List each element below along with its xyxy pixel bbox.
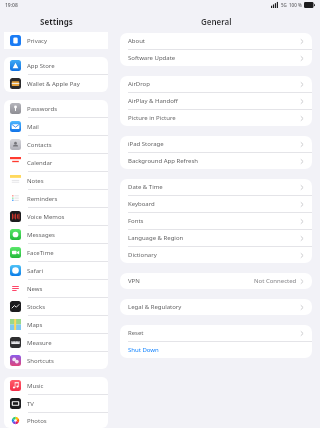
staticText: Stocks: [27, 303, 46, 311]
staticText: Contacts: [27, 141, 52, 149]
staticText: Settings: [40, 16, 73, 27]
button[interactable]: TV: [4, 395, 108, 412]
button[interactable]: Background App Refresh: [120, 153, 312, 169]
button[interactable]: Shut Down: [120, 342, 312, 358]
staticText: Not Connected: [254, 277, 297, 285]
button[interactable]: Reminders: [4, 190, 108, 207]
staticText: Software Update: [128, 54, 176, 62]
staticText: Background App Refresh: [128, 157, 198, 165]
staticText: Safari: [27, 267, 44, 275]
button[interactable]: Calendar: [4, 154, 108, 171]
staticText: Measure: [27, 339, 52, 347]
button[interactable]: Reset: [120, 325, 312, 341]
staticText: Reset: [128, 329, 144, 337]
button[interactable]: Notes: [4, 172, 108, 189]
button[interactable]: Stocks: [4, 298, 108, 315]
button[interactable]: Picture in Picture: [120, 110, 312, 126]
staticText: 19:08: [5, 2, 18, 9]
staticText: Voice Memos: [27, 213, 65, 221]
staticText: Photos: [27, 417, 47, 425]
button[interactable]: Contacts: [4, 136, 108, 153]
button[interactable]: Software Update: [120, 50, 312, 66]
button[interactable]: iPad Storage: [120, 136, 312, 152]
staticText: About: [128, 37, 146, 45]
button[interactable]: Legal & Regulatory: [120, 299, 312, 315]
staticText: iPad Storage: [128, 140, 164, 148]
staticText: Picture in Picture: [128, 114, 176, 122]
staticText: VPN: [128, 277, 140, 285]
staticText: Legal & Regulatory: [128, 303, 182, 311]
staticText: News: [27, 285, 43, 293]
staticText: Messages: [27, 231, 55, 239]
staticText: 100 %: [289, 2, 302, 8]
button[interactable]: Privacy: [4, 32, 108, 49]
button[interactable]: Passwords: [4, 100, 108, 117]
staticText: AirDrop: [128, 80, 150, 88]
staticText: Shut Down: [128, 346, 159, 354]
button[interactable]: FaceTime: [4, 244, 108, 261]
staticText: Date & Time: [128, 183, 163, 191]
button[interactable]: Messages: [4, 226, 108, 243]
button[interactable]: Maps: [4, 316, 108, 333]
button[interactable]: Music: [4, 377, 108, 394]
button[interactable]: AirDrop: [120, 76, 312, 92]
staticText: App Store: [27, 62, 55, 70]
staticText: AirPlay & Handoff: [128, 97, 178, 105]
staticText: Maps: [27, 321, 43, 329]
button[interactable]: Measure: [4, 334, 108, 351]
button[interactable]: Photos: [4, 413, 108, 428]
button[interactable]: Language & Region: [120, 230, 312, 246]
button[interactable]: Shortcuts: [4, 352, 108, 369]
button[interactable]: App Store: [4, 57, 108, 74]
button[interactable]: Keyboard: [120, 196, 312, 212]
button[interactable]: About: [120, 33, 312, 49]
staticText: Shortcuts: [27, 357, 54, 365]
staticText: Language & Region: [128, 234, 184, 242]
staticText: Notes: [27, 177, 44, 185]
staticText: Mail: [27, 123, 39, 131]
button[interactable]: News: [4, 280, 108, 297]
staticText: Reminders: [27, 195, 58, 203]
staticText: Fonts: [128, 217, 144, 225]
staticText: Wallet & Apple Pay: [27, 80, 80, 88]
button[interactable]: VPN: [120, 273, 312, 289]
button[interactable]: AirPlay & Handoff: [120, 93, 312, 109]
button[interactable]: Wallet & Apple Pay: [4, 75, 108, 92]
staticText: Keyboard: [128, 200, 155, 208]
staticText: Music: [27, 382, 44, 390]
button[interactable]: Safari: [4, 262, 108, 279]
staticText: Calendar: [27, 159, 53, 167]
staticText: Privacy: [27, 37, 48, 45]
staticText: General: [201, 16, 232, 27]
staticText: Dictionary: [128, 251, 157, 259]
staticText: FaceTime: [27, 249, 54, 257]
staticText: Passwords: [27, 105, 58, 113]
button[interactable]: Dictionary: [120, 247, 312, 263]
staticText: TV: [27, 400, 34, 408]
button[interactable]: Fonts: [120, 213, 312, 229]
button[interactable]: Date & Time: [120, 179, 312, 195]
staticText: 5G: [281, 2, 287, 8]
button[interactable]: Voice Memos: [4, 208, 108, 225]
button[interactable]: Mail: [4, 118, 108, 135]
